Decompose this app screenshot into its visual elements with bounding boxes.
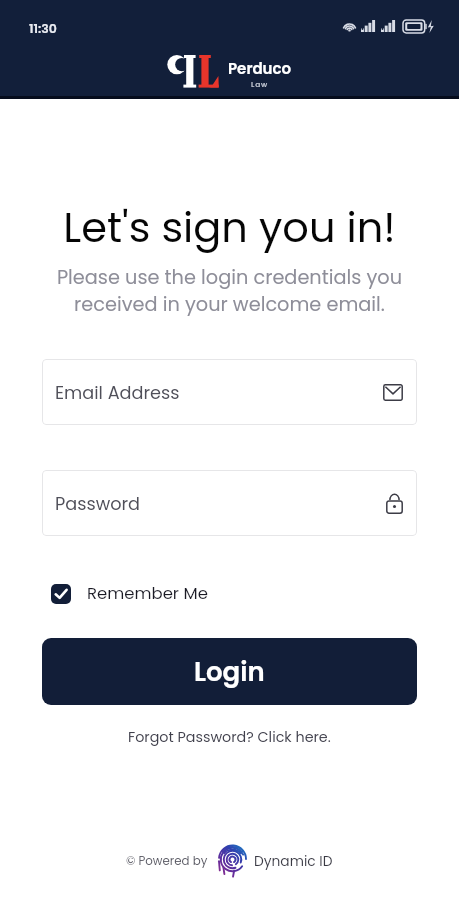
other: Password bbox=[386, 493, 403, 514]
other: Dynamic ID bbox=[219, 845, 246, 878]
staticText: Law bbox=[251, 79, 269, 89]
staticText: Password bbox=[55, 491, 141, 516]
staticText: Email Address bbox=[55, 380, 180, 405]
staticText: Dynamic ID bbox=[254, 852, 333, 871]
staticText: 11:30 bbox=[29, 20, 57, 37]
button[interactable]: Password bbox=[42, 470, 417, 536]
staticText: Let's sign you in! bbox=[0, 198, 459, 256]
other: Perduco Law bbox=[170, 55, 220, 88]
other: Email bbox=[383, 384, 403, 401]
staticText: Remember Me bbox=[87, 582, 208, 605]
button[interactable]: Forgot Password? Click here. bbox=[0, 727, 459, 747]
button[interactable]: Remember Me bbox=[51, 582, 208, 605]
staticText: Login bbox=[194, 654, 265, 690]
staticText: Please use the login credentials you rec… bbox=[0, 264, 459, 318]
button[interactable]: Email Address bbox=[42, 359, 417, 425]
button[interactable]: Login bbox=[42, 638, 417, 705]
staticText: Forgot Password? Click here. bbox=[128, 727, 331, 747]
staticText: Perduco bbox=[228, 58, 292, 79]
staticText: © Powered by bbox=[126, 853, 208, 870]
